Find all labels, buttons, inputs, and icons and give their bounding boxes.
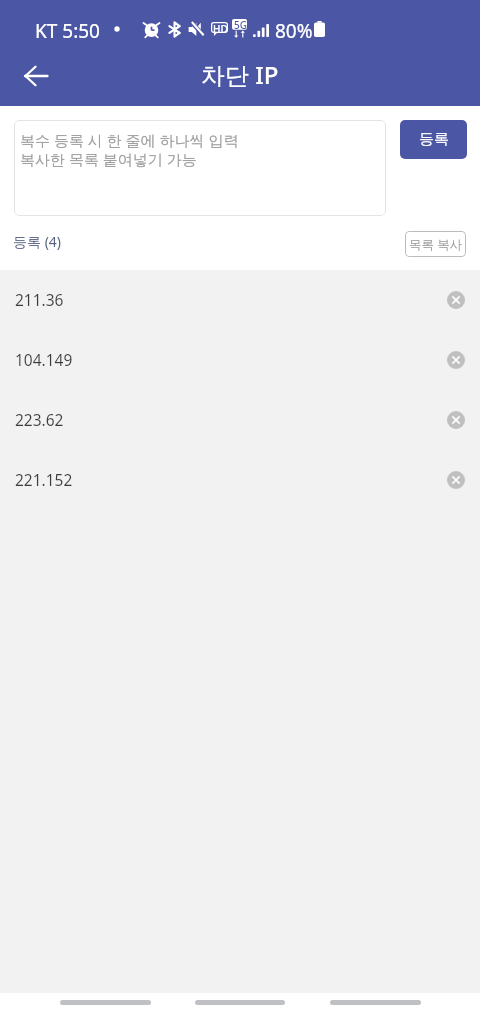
button[interactable]: Remove: [438, 402, 474, 438]
button[interactable]: Remove: [438, 342, 474, 378]
button[interactable]: Remove: [438, 282, 474, 318]
staticText: 104.149: [15, 349, 73, 370]
staticText: 복수 등록 시 한 줄에 하나씩 입력: [20, 130, 239, 150]
staticText: 221.152: [15, 469, 73, 490]
button[interactable]: Back: [14, 54, 58, 98]
button[interactable]: 211.36: [0, 270, 480, 330]
staticText: 등록 (4): [13, 232, 62, 251]
staticText: 복사한 목록 붙여넣기 가능: [20, 149, 197, 169]
button[interactable]: 223.62: [0, 390, 480, 450]
staticText: 등록: [419, 130, 449, 149]
staticText: 5G: [234, 18, 247, 32]
staticText: KT 5:50: [35, 18, 100, 44]
button[interactable]: 복수 등록 시 한 줄에 하나씩 입력: [14, 120, 386, 216]
button[interactable]: 221.152: [0, 450, 480, 510]
staticText: 80%: [275, 18, 313, 44]
button[interactable]: Recents: [60, 1000, 151, 1005]
button[interactable]: 목록 복사: [405, 231, 466, 257]
staticText: 목록 복사: [409, 236, 463, 253]
button[interactable]: 등록: [400, 120, 467, 159]
staticText: HD: [213, 22, 228, 36]
staticText: 211.36: [15, 289, 64, 310]
staticText: 223.62: [15, 409, 64, 430]
button[interactable]: Remove: [438, 462, 474, 498]
button[interactable]: Back: [330, 1000, 421, 1005]
button[interactable]: 104.149: [0, 330, 480, 390]
staticText: 차단 IP: [201, 58, 279, 91]
button[interactable]: Home: [195, 1000, 285, 1005]
